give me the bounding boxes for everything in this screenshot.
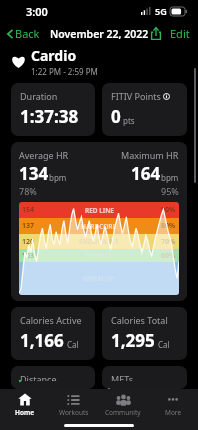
staticText: 1,166 <box>20 329 64 352</box>
button[interactable]: Average HR <box>11 142 187 301</box>
staticText: HARDCORE <box>81 222 117 231</box>
staticText: 120 <box>22 237 35 247</box>
button[interactable]: Calories Total <box>102 307 187 360</box>
staticText: 70% <box>161 237 176 247</box>
staticText: 134 <box>19 162 49 185</box>
button[interactable]: METs <box>102 366 187 389</box>
staticText: 137 <box>22 221 35 231</box>
staticText: 95% <box>161 185 179 197</box>
staticText: 164 <box>131 162 161 185</box>
staticText: Duration <box>20 90 58 102</box>
button[interactable]: Duration <box>11 83 95 136</box>
staticText: FITNESS <box>86 251 112 260</box>
staticText: Cal <box>158 339 170 350</box>
staticText: Distance <box>20 373 57 381</box>
staticText: ENDURANCE <box>79 237 119 246</box>
staticText: bpm <box>49 172 67 183</box>
staticText: RED LINE <box>85 206 114 215</box>
button[interactable]: Edit <box>168 23 192 44</box>
staticText: Calories Total <box>111 314 168 326</box>
staticText: 0 <box>111 105 121 128</box>
staticText: METs <box>111 373 133 381</box>
staticText: Home <box>15 408 34 417</box>
staticText: 103 <box>22 251 35 261</box>
staticText: Calories Active <box>20 314 82 326</box>
staticText: Cardio <box>31 46 77 65</box>
staticText: 5G <box>155 5 167 17</box>
staticText: Edit <box>170 26 190 41</box>
staticText: Workouts <box>59 408 89 417</box>
staticText: bpm <box>161 172 179 183</box>
button[interactable]: Distance <box>11 366 95 389</box>
button[interactable]: Home <box>0 390 49 420</box>
button[interactable]: Back <box>4 23 43 44</box>
staticText: 1,295 <box>111 329 155 352</box>
staticText: Back <box>15 26 40 41</box>
staticText: 154 <box>22 205 35 215</box>
staticText: Maximum HR <box>121 149 179 161</box>
button[interactable]: Community <box>98 391 148 420</box>
staticText: November 22, 2022 <box>50 27 149 41</box>
staticText: 78% <box>19 185 37 197</box>
staticText: 90% <box>161 205 176 215</box>
button[interactable]: More <box>148 391 198 420</box>
staticText: 3:00 <box>26 4 48 19</box>
button[interactable]: Share <box>149 25 163 42</box>
staticText: WARM UP <box>83 274 115 283</box>
staticText: 1:22 PM - 2:59 PM <box>31 66 98 77</box>
button[interactable]: Workouts <box>49 391 98 420</box>
staticText: pts <box>123 115 135 126</box>
staticText: More <box>165 408 182 417</box>
staticText: FITIV Points <box>111 90 161 102</box>
staticText: 1:37:38 <box>20 105 79 128</box>
staticText: Average HR <box>19 149 69 161</box>
staticText: 60% <box>161 251 176 261</box>
button[interactable]: FITIV Points <box>102 83 187 136</box>
staticText: Community <box>105 408 141 417</box>
staticText: Cal <box>67 339 79 350</box>
button[interactable]: Calories Active <box>11 307 95 360</box>
staticText: 80% <box>161 221 176 231</box>
